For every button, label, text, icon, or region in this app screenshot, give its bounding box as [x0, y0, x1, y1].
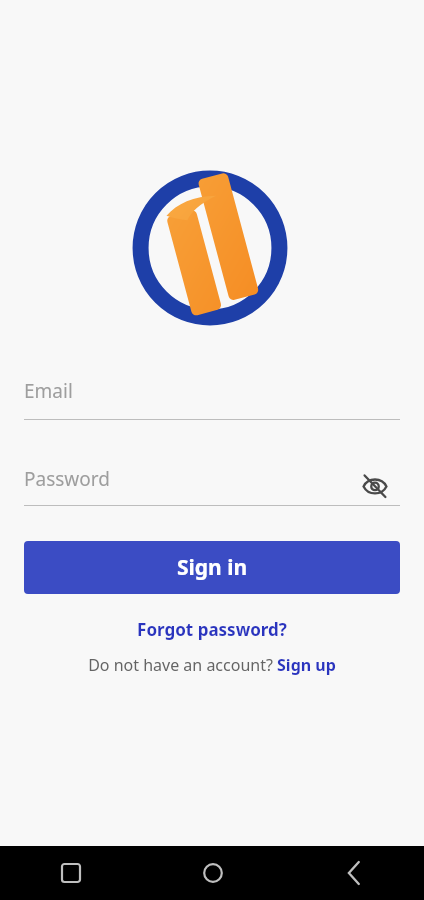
staticText: Do not have an account? Sign up [88, 654, 336, 676]
staticText: Password [24, 466, 110, 492]
staticText: Forgot password? [137, 618, 287, 641]
button[interactable]: Recent apps [0, 846, 142, 900]
button[interactable]: Do not have an account? Sign up [60, 650, 364, 680]
staticText: Email [24, 378, 73, 404]
button[interactable]: Back [283, 846, 424, 900]
button[interactable]: Show password [358, 470, 392, 502]
button[interactable]: Password [24, 466, 400, 506]
staticText: Sign in [177, 553, 248, 582]
button[interactable]: Sign in [24, 541, 400, 594]
button[interactable]: Email [24, 378, 400, 420]
button[interactable]: Home [142, 846, 283, 900]
button[interactable]: Forgot password? [112, 613, 312, 645]
